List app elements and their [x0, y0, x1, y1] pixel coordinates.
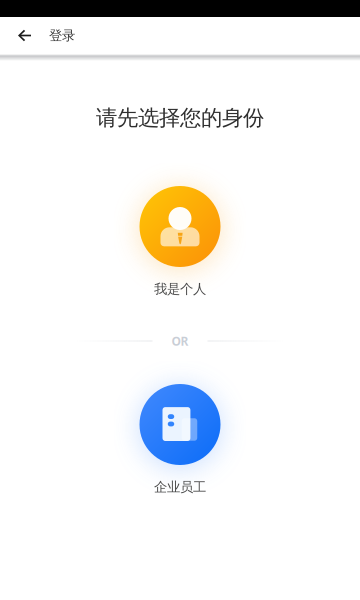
button[interactable]: Back [0, 17, 49, 54]
staticText: 企业员工 [154, 479, 206, 495]
staticText: 我是个人 [154, 281, 206, 297]
staticText: 请先选择您的身份 [96, 105, 264, 131]
staticText: OR [171, 333, 188, 349]
staticText: 登录 [49, 27, 75, 44]
button[interactable]: 我是个人 [95, 186, 265, 296]
button[interactable]: 企业员工 [95, 384, 265, 494]
